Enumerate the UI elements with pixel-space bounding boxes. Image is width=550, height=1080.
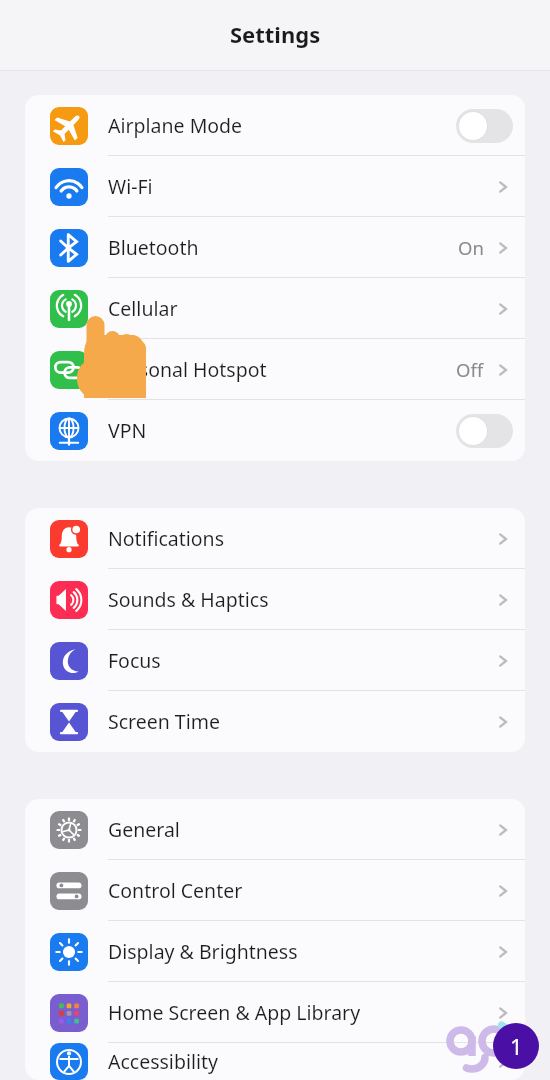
button[interactable]: Screen Time: [25, 691, 525, 752]
button[interactable]: Accessibility: [25, 1043, 525, 1080]
button[interactable]: Notifications: [25, 508, 525, 569]
button[interactable]: Personal Hotspot: [25, 339, 525, 400]
button[interactable]: Wi-Fi: [25, 156, 525, 217]
staticText: Focus: [108, 647, 161, 674]
staticText: Accessibility: [108, 1048, 218, 1075]
button[interactable]: Home Screen & App Library: [25, 982, 525, 1043]
staticText: VPN: [108, 417, 147, 444]
button[interactable]: Sounds & Haptics: [25, 569, 525, 630]
staticText: Home Screen & App Library: [108, 999, 361, 1026]
button[interactable]: Focus: [25, 630, 525, 691]
button[interactable]: Control Center: [25, 860, 525, 921]
staticText: Off: [456, 357, 484, 382]
staticText: Airplane Mode: [108, 112, 243, 139]
staticText: Control Center: [108, 877, 243, 904]
button[interactable]: Airplane Mode: [25, 95, 525, 156]
staticText: Cellular: [108, 295, 178, 322]
staticText: General: [108, 816, 180, 843]
button[interactable]: Bluetooth: [25, 217, 525, 278]
button[interactable]: Notification count 1: [493, 1023, 539, 1069]
staticText: Display & Brightness: [108, 938, 298, 965]
staticText: On: [458, 235, 484, 260]
staticText: Settings: [230, 19, 321, 49]
staticText: Sounds & Haptics: [108, 586, 269, 613]
button[interactable]: General: [25, 799, 525, 860]
staticText: Personal Hotspot: [108, 356, 267, 383]
staticText: Notifications: [108, 525, 224, 552]
staticText: Bluetooth: [108, 234, 199, 261]
staticText: 1: [510, 1031, 523, 1061]
button[interactable]: VPN: [25, 400, 525, 461]
button[interactable]: Display & Brightness: [25, 921, 525, 982]
staticText: Wi-Fi: [108, 173, 153, 200]
staticText: Screen Time: [108, 708, 220, 735]
button[interactable]: Cellular: [25, 278, 525, 339]
